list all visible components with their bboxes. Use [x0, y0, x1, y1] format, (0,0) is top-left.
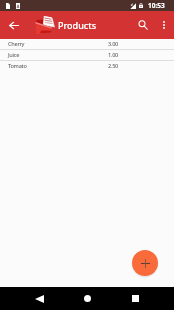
button[interactable]: Back — [24, 287, 54, 310]
button[interactable]: Tomato — [0, 61, 174, 72]
button[interactable]: Add — [132, 250, 158, 276]
staticText: 1.00 — [108, 51, 119, 59]
staticText: 2.50 — [108, 62, 119, 70]
staticText: Products — [58, 19, 97, 31]
button[interactable]: Back — [0, 11, 28, 39]
button[interactable]: Search — [131, 11, 154, 39]
staticText: 3.00 — [108, 40, 119, 48]
staticText: Juice — [8, 51, 20, 59]
button[interactable]: Juice — [0, 50, 174, 61]
staticText: 10:53 — [148, 1, 165, 10]
button[interactable]: Recents — [120, 287, 150, 310]
staticText: Cherry — [8, 40, 25, 48]
staticText: Tomato — [8, 62, 27, 70]
button[interactable]: More options — [154, 11, 173, 39]
button[interactable]: Home — [72, 287, 102, 310]
button[interactable]: Cherry — [0, 39, 174, 50]
